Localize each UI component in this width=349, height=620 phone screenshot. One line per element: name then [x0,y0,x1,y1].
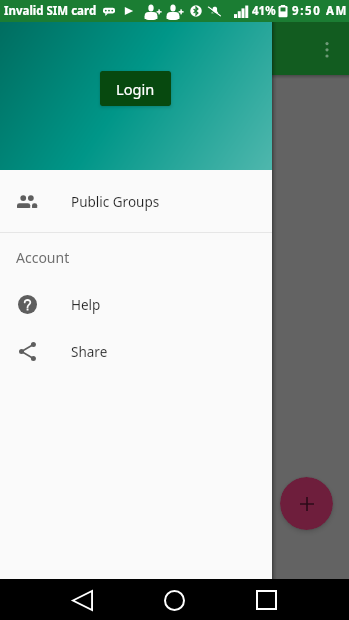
button[interactable]: Back [62,580,102,620]
staticText: Account [16,248,70,267]
button[interactable]: Public Groups [0,178,272,225]
button[interactable]: Home [154,580,194,620]
button[interactable]: Help [0,281,272,328]
staticText: Invalid SIM card [4,3,97,19]
staticText: Login [116,79,155,99]
button[interactable]: Share [0,328,272,375]
button[interactable]: Add [280,477,333,530]
staticText: Help [71,296,101,314]
staticText: Share [71,343,108,361]
button[interactable]: Recents [246,580,286,620]
button[interactable]: More options [308,30,346,68]
staticText: Public Groups [71,193,160,211]
button[interactable]: Login [100,71,171,106]
staticText: 41% [252,3,276,19]
staticText: 9:50 AM [292,3,348,19]
